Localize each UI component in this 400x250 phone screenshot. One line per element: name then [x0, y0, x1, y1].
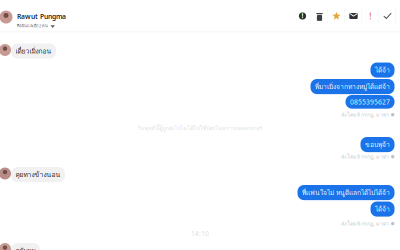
staticText: พี่มาเมิ่งจากทางหมู่ได้แต่จ้า: [315, 81, 390, 92]
staticText: ได้จ้า: [375, 65, 390, 75]
staticText: เดี๋ยวเมิ่งกอน: [15, 46, 51, 56]
staticText: !: [301, 11, 303, 20]
staticText: ถึงฉันและอีก 2 คน: [17, 23, 48, 29]
staticText: คุยทางข้างนอน: [15, 169, 60, 180]
staticText: ครับผม: [15, 245, 35, 250]
staticText: ส่งโดย 8 กรกฎ. มาตา: [341, 110, 389, 119]
staticText: ส่งโดย 8 กรกฎ. มาตา: [341, 152, 389, 161]
staticText: 14:10: [191, 229, 209, 238]
staticText: Rawut Pungma: [17, 12, 66, 21]
button[interactable]: Report spam: [294, 9, 311, 23]
staticText: พื่แฟนใจไม่ หนูดีแลกได้ไปได้จ้า: [302, 187, 390, 198]
button[interactable]: Done: [379, 9, 396, 23]
staticText: 0855395627: [350, 97, 390, 106]
button[interactable]: Mark as unread: [345, 9, 362, 23]
button[interactable]: Mark important: [362, 9, 379, 23]
staticText: วันพุธที่นี้ผู้ถูกส่งไปไม่ได้ไปใช้บัตรไม…: [137, 124, 262, 132]
button[interactable]: Star: [328, 9, 345, 23]
staticText: ได้จ้า: [375, 204, 390, 214]
staticText: ขอบพุจ้า: [365, 139, 390, 150]
staticText: ส่งโดย 8 กรกฎ. มาตา: [341, 219, 389, 228]
button[interactable]: Delete: [311, 9, 328, 23]
staticText: !: [369, 10, 372, 22]
button[interactable]: Rawut Pungma: [0, 10, 200, 26]
